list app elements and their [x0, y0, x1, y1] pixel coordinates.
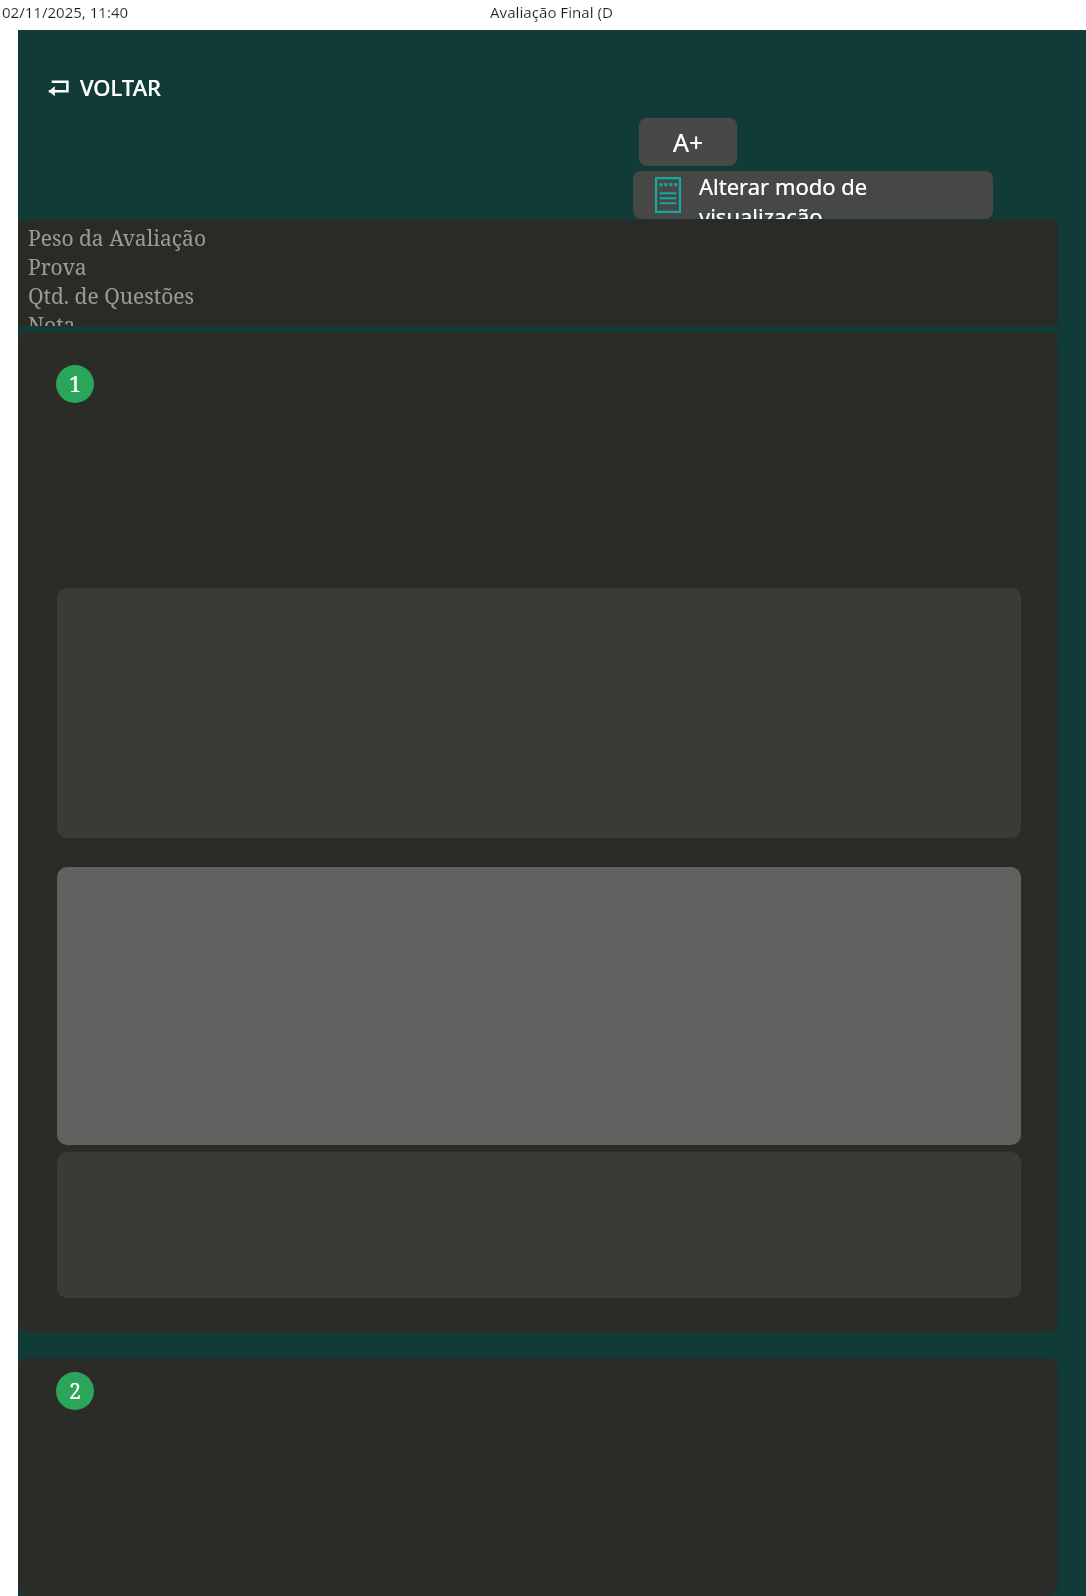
button[interactable]: 2 [18, 1358, 1058, 1596]
staticText: VOLTAR [80, 72, 162, 102]
staticText: Prova [28, 253, 87, 282]
button[interactable]: Aumentar fonte [639, 118, 737, 166]
staticText: Alterar modo de visualização [699, 171, 993, 219]
button[interactable]: VOLTAR [40, 68, 166, 106]
button[interactable]: Alterar modo de visualização [633, 171, 993, 219]
staticText: Avaliação Final (D [490, 2, 613, 22]
staticText: Peso da Avaliação [28, 224, 206, 253]
staticText: 2 [69, 1377, 81, 1406]
staticText: 1 [69, 370, 81, 399]
staticText: Qtd. de Questões [28, 282, 195, 311]
staticText: Nota [28, 311, 76, 326]
staticText: A+ [673, 125, 704, 159]
staticText: 02/11/2025, 11:40 [2, 2, 129, 22]
button[interactable]: 1 [18, 332, 1058, 1332]
